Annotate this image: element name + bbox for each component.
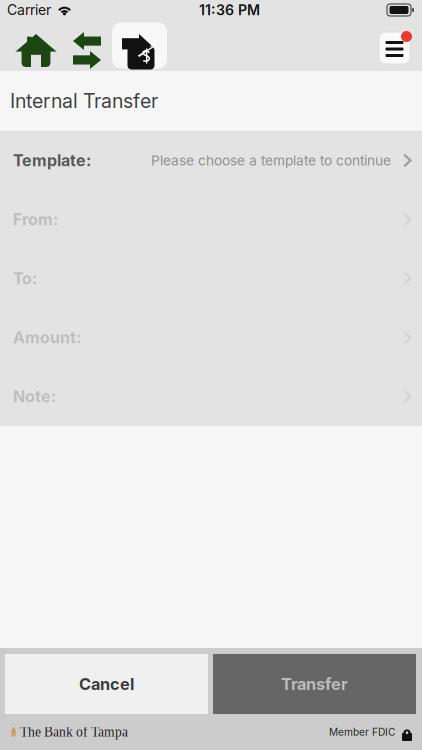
staticText: From: [13,210,58,229]
button[interactable]: From: [0,190,422,249]
staticText: Amount: [13,328,81,347]
staticText: Template: [13,151,91,170]
button[interactable]: Cancel [5,654,208,714]
staticText: Please choose a template to continue [151,152,391,169]
staticText: Transfer [281,674,348,694]
button[interactable]: Amount: [0,308,422,367]
button[interactable]: Transfers [56,20,112,71]
button[interactable]: Transfer [213,654,416,714]
staticText: Internal Transfer [10,89,158,113]
staticText: Carrier [7,1,51,18]
staticText: Cancel [79,674,134,694]
button[interactable]: Internal Transfer, selected [112,17,167,73]
button[interactable]: Template: [0,131,422,190]
button[interactable]: Home [0,20,56,71]
staticText: To: [13,269,37,288]
staticText: Member FDIC [329,726,395,738]
staticText: Note: [13,387,56,406]
button[interactable]: Note: [0,367,422,426]
button[interactable]: Menu [379,27,422,64]
staticText: The Bank of Tampa [20,724,128,740]
staticText: 11:36 PM [199,1,260,18]
